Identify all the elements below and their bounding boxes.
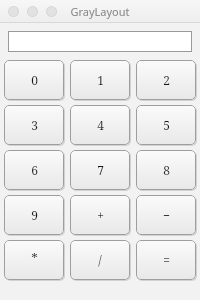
button[interactable]: 0 (4, 60, 64, 100)
button[interactable]: 7 (70, 150, 130, 190)
button[interactable]: Minimize window (27, 6, 38, 17)
staticText: 3 (31, 117, 38, 133)
staticText: 8 (163, 162, 170, 178)
button[interactable]: * (4, 240, 64, 280)
button[interactable]: 5 (136, 105, 196, 145)
staticText: 2 (163, 72, 170, 88)
staticText: 7 (97, 162, 104, 178)
staticText: * (31, 249, 38, 267)
button[interactable]: Expression input (8, 31, 192, 52)
button[interactable]: 6 (4, 150, 64, 190)
button[interactable]: 4 (70, 105, 130, 145)
button[interactable]: 3 (4, 105, 64, 145)
staticText: 0 (31, 72, 38, 88)
staticText: 4 (97, 117, 104, 133)
staticText: = (163, 252, 170, 268)
button[interactable]: = (136, 240, 196, 280)
button[interactable]: Close window (8, 6, 19, 17)
staticText: 1 (97, 72, 104, 88)
button[interactable]: 9 (4, 195, 64, 235)
button[interactable]: 2 (136, 60, 196, 100)
staticText: 5 (163, 117, 170, 133)
button[interactable]: + (70, 195, 130, 235)
button[interactable]: 1 (70, 60, 130, 100)
button[interactable]: 8 (136, 150, 196, 190)
staticText: / (98, 252, 102, 268)
staticText: + (97, 207, 104, 223)
button[interactable]: Zoom window (46, 6, 57, 17)
button[interactable]: − (136, 195, 196, 235)
staticText: 9 (31, 207, 38, 223)
staticText: − (163, 207, 170, 223)
staticText: 6 (31, 162, 38, 178)
staticText: GrayLayout (70, 4, 130, 19)
button[interactable]: / (70, 240, 130, 280)
